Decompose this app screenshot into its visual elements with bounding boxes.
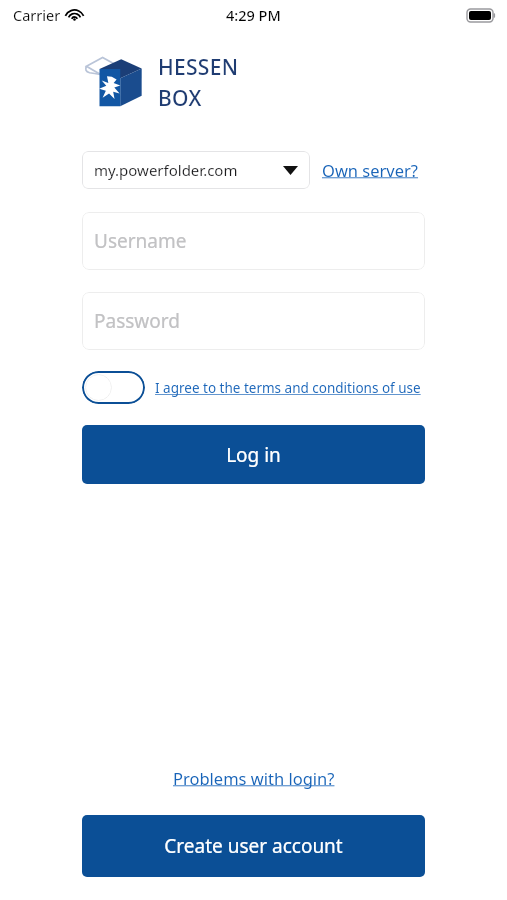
- staticText: Log in: [226, 442, 281, 468]
- staticText: BOX: [158, 84, 202, 113]
- staticText: Username: [94, 228, 187, 254]
- button[interactable]: Accept terms and conditions toggle: [82, 371, 145, 404]
- button[interactable]: Create user account: [82, 815, 425, 877]
- staticText: Create user account: [164, 833, 343, 859]
- button[interactable]: Problems with login?: [165, 763, 343, 793]
- button[interactable]: Log in: [82, 425, 425, 484]
- staticText: 4:29 PM: [226, 5, 281, 25]
- staticText: Password: [94, 308, 180, 334]
- button[interactable]: my.powerfolder.com: [82, 151, 310, 189]
- staticText: I agree to the terms and conditions of u…: [155, 379, 421, 397]
- button[interactable]: I agree to the terms and conditions of u…: [155, 379, 421, 397]
- button[interactable]: Password: [82, 292, 425, 350]
- staticText: Carrier: [13, 5, 61, 25]
- button[interactable]: Own server?: [322, 159, 419, 181]
- staticText: my.powerfolder.com: [94, 160, 238, 180]
- staticText: Own server?: [322, 159, 419, 181]
- staticText: HESSEN: [158, 53, 239, 82]
- button[interactable]: Username: [82, 212, 425, 270]
- staticText: Problems with login?: [173, 767, 335, 789]
